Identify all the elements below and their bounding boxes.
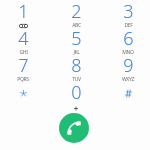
staticText: WXYZ: [122, 76, 134, 83]
staticText: MNO: [122, 49, 134, 56]
staticText: 0: [71, 80, 82, 105]
staticText: 1: [18, 0, 29, 24]
button[interactable]: 4: [0, 28, 48, 55]
staticText: 9: [123, 53, 134, 78]
staticText: 8: [71, 53, 82, 78]
staticText: 3: [123, 0, 134, 24]
staticText: JKL: [73, 49, 80, 56]
staticText: ABC: [72, 22, 81, 29]
staticText: 4: [18, 26, 29, 51]
button[interactable]: Call: [59, 113, 89, 143]
button[interactable]: [0, 82, 48, 109]
staticText: 6: [123, 26, 134, 51]
staticText: 7: [18, 53, 29, 78]
button[interactable]: [103, 82, 150, 109]
button[interactable]: 8: [51, 55, 101, 82]
button[interactable]: 3: [103, 1, 150, 28]
button[interactable]: 5: [51, 28, 101, 55]
staticText: GHI: [19, 49, 28, 56]
button[interactable]: 9: [103, 55, 150, 82]
staticText: TUV: [72, 76, 81, 83]
staticText: 2: [71, 0, 82, 24]
staticText: PQRS: [17, 76, 29, 83]
staticText: 5: [71, 26, 82, 51]
button[interactable]: 7: [0, 55, 48, 82]
staticText: DEF: [124, 22, 133, 29]
button[interactable]: 1: [0, 1, 48, 28]
button[interactable]: 0: [51, 82, 101, 109]
button[interactable]: 2: [51, 1, 101, 28]
button[interactable]: 6: [103, 28, 150, 55]
